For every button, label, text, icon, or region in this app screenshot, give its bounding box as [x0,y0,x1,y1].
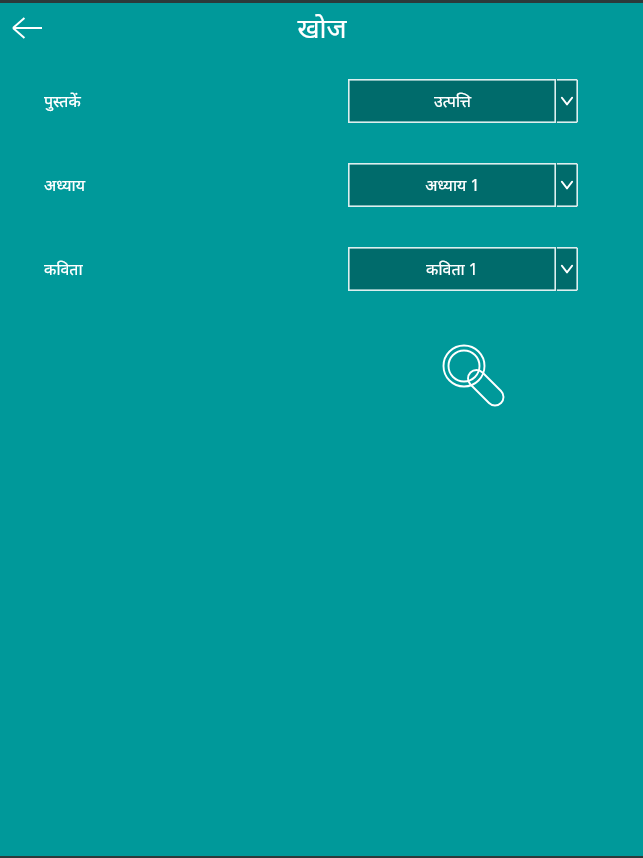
button[interactable]: कविता 1 [348,247,578,291]
staticText: अध्याय [44,174,85,196]
staticText: खोज [297,9,347,46]
button[interactable]: कविता [36,251,91,287]
button[interactable]: पुस्तकें [36,83,89,119]
staticText: कविता [44,258,83,280]
staticText: उत्पत्ति [434,90,471,112]
staticText: पुस्तकें [44,90,81,112]
button[interactable]: Back [4,5,50,51]
button[interactable]: उत्पत्ति [348,79,578,123]
button[interactable]: अध्याय 1 [348,163,578,207]
button[interactable]: Search [432,340,498,406]
staticText: कविता 1 [426,258,478,280]
staticText: अध्याय 1 [425,174,480,196]
button[interactable]: अध्याय [36,167,93,203]
